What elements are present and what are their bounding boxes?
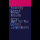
button[interactable]: Albums bbox=[9, 14, 31, 17]
button[interactable]: Songs bbox=[9, 17, 31, 20]
staticText: Artists bbox=[10, 11, 18, 14]
staticText: Compilations bbox=[10, 26, 28, 29]
staticText: Albums bbox=[10, 14, 20, 17]
button[interactable]: Recently Added bbox=[9, 8, 31, 11]
button[interactable]: Artists bbox=[9, 11, 31, 14]
staticText: Recently Added bbox=[10, 6, 22, 13]
button[interactable]: Made for You bbox=[9, 20, 31, 23]
staticText: Genres bbox=[10, 23, 20, 26]
button[interactable]: Compilations bbox=[9, 26, 31, 29]
button[interactable]: Genres bbox=[9, 23, 31, 26]
staticText: Songs bbox=[10, 17, 18, 20]
staticText: Made for You bbox=[10, 20, 28, 23]
